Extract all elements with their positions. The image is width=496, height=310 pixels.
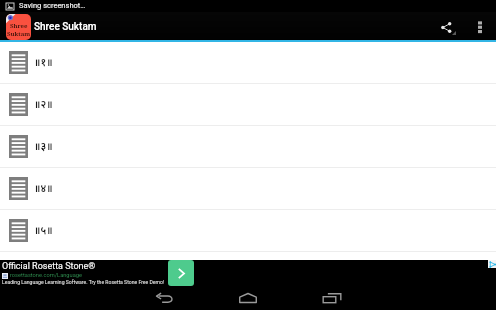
staticText: Leading Language Learning Software. Try … (2, 279, 165, 285)
button[interactable]: Home (224, 286, 272, 310)
staticText: rosettastone.com/Language (10, 272, 83, 279)
button[interactable]: ॥४॥ (0, 168, 496, 209)
button[interactable]: ॥३॥ (0, 126, 496, 167)
staticText: Saving screenshot… (19, 1, 86, 10)
staticText: Shree Suktam (34, 21, 97, 33)
button[interactable]: Recent apps (308, 286, 356, 310)
button[interactable]: ॥५॥ (0, 210, 496, 251)
staticText: ॥२॥ (34, 99, 53, 113)
button[interactable]: More options (464, 12, 494, 42)
staticText: Suktam (7, 30, 31, 38)
button[interactable]: ॥१॥ (0, 42, 496, 83)
button[interactable]: Open advertisement (168, 260, 194, 286)
staticText: ॥४॥ (34, 183, 53, 197)
staticText: ॥१॥ (34, 57, 53, 71)
staticText: Shree (10, 22, 28, 30)
staticText: ॥५॥ (34, 225, 53, 239)
button[interactable]: Back (140, 286, 188, 310)
button[interactable]: ॥२॥ (0, 84, 496, 125)
staticText: Official Rosetta Stone® (2, 261, 96, 272)
staticText: ॥३॥ (34, 141, 53, 155)
button[interactable]: Share (428, 12, 464, 42)
